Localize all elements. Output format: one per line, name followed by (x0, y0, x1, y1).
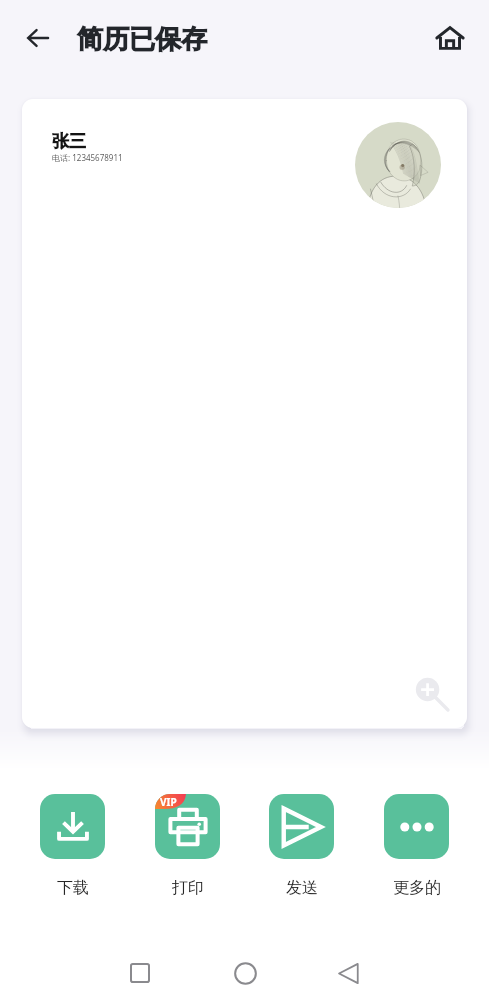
button[interactable]: 张三 (22, 99, 467, 728)
staticText: 张三 (52, 131, 86, 152)
button[interactable]: Recents (116, 949, 164, 997)
button[interactable]: 发送 (269, 794, 334, 898)
button[interactable]: Back (324, 949, 372, 997)
button[interactable]: Back (18, 18, 58, 58)
staticText: VIP (160, 795, 177, 809)
button[interactable]: 下载 (40, 794, 105, 898)
staticText: 电话: 12345678911 (52, 152, 123, 163)
button[interactable]: 更多的 (384, 794, 449, 898)
button[interactable]: Home (430, 18, 470, 58)
staticText: 下载 (57, 878, 89, 898)
button[interactable]: Zoom in (414, 676, 450, 712)
staticText: 打印 (172, 878, 204, 898)
staticText: 更多的 (393, 878, 441, 898)
button[interactable]: Home (221, 949, 269, 997)
button[interactable]: VIP (155, 794, 220, 898)
staticText: 简历已保存 (77, 23, 207, 56)
staticText: 发送 (286, 878, 318, 898)
